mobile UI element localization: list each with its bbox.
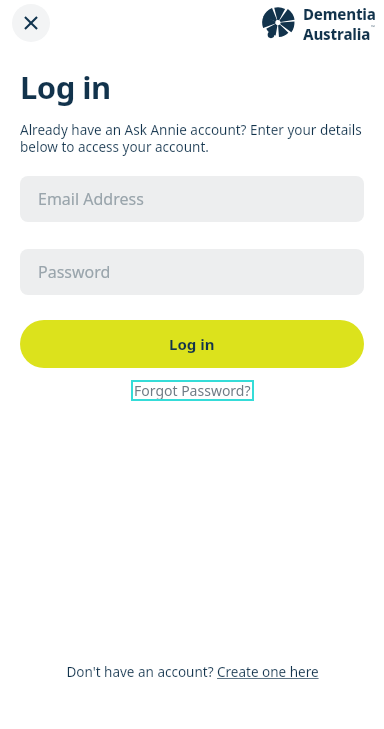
staticText: ™ bbox=[371, 24, 375, 31]
staticText: Dementia bbox=[303, 4, 376, 24]
button[interactable]: Don't have an account? Create one here bbox=[66, 663, 319, 681]
staticText: Password bbox=[38, 261, 111, 283]
button[interactable]: Log in bbox=[20, 320, 364, 368]
staticText: Log in bbox=[20, 66, 111, 108]
staticText: Don't have an account? Create one here bbox=[66, 663, 319, 681]
staticText: Forgot Password? bbox=[134, 381, 251, 400]
button[interactable]: Password bbox=[20, 249, 364, 295]
staticText: Email Address bbox=[38, 188, 144, 210]
staticText: Already have an Ask Annie account? Enter… bbox=[20, 121, 364, 156]
staticText: Australia bbox=[303, 24, 371, 44]
button[interactable]: Close bbox=[12, 4, 50, 42]
button[interactable]: Forgot Password? bbox=[131, 380, 254, 401]
button[interactable]: Email Address bbox=[20, 176, 364, 222]
staticText: Log in bbox=[169, 334, 215, 354]
